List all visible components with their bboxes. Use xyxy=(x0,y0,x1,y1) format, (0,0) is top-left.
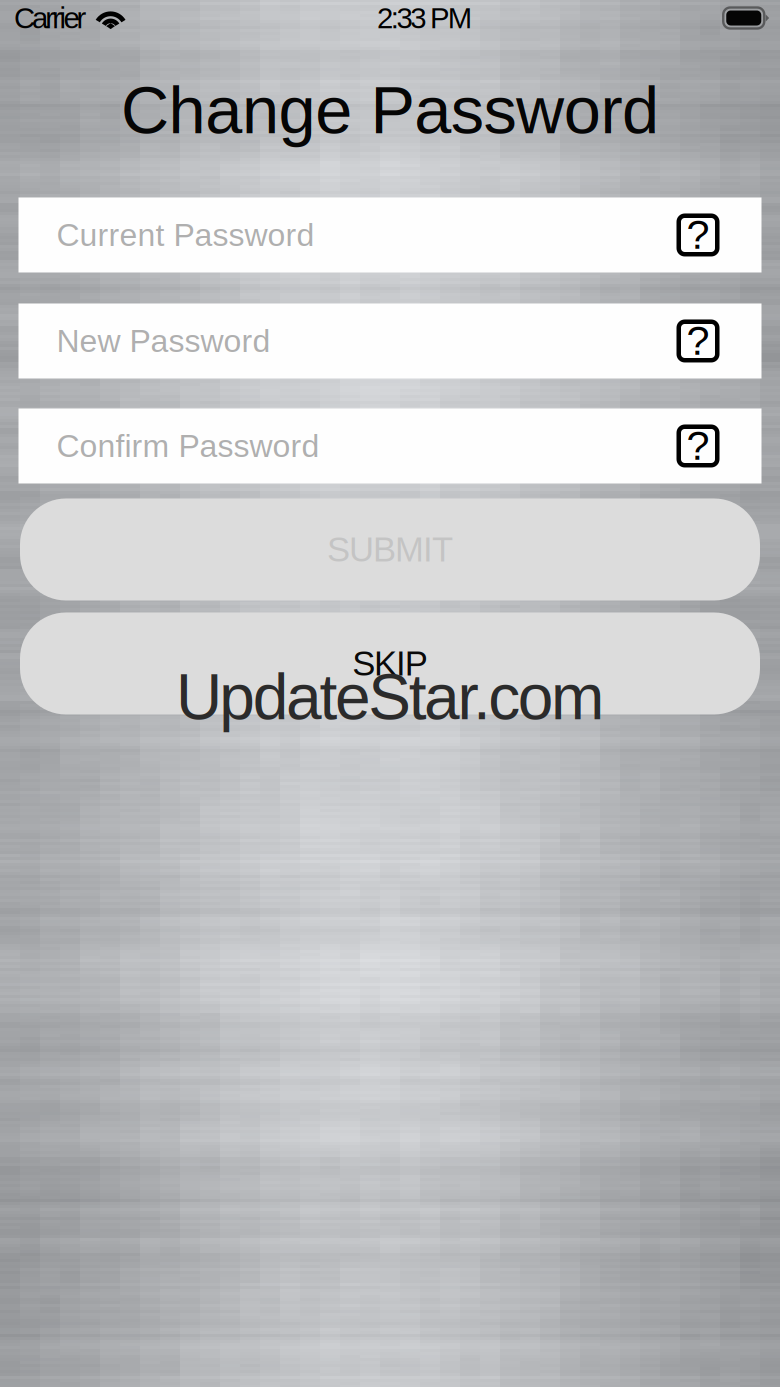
staticText: ? xyxy=(686,422,709,469)
staticText: Change Password xyxy=(121,73,659,147)
button[interactable]: About Confirm Password xyxy=(676,424,719,467)
button[interactable]: About New Password xyxy=(676,319,719,362)
staticText: ? xyxy=(686,211,709,258)
staticText: UpdateStar.com xyxy=(176,661,604,733)
staticText: Current Password xyxy=(56,217,314,253)
button[interactable]: About Current Password xyxy=(676,213,719,256)
button[interactable]: SKIP xyxy=(20,612,760,714)
staticText: SKIP xyxy=(352,644,428,683)
staticText: ? xyxy=(686,317,709,364)
staticText: SUBMIT xyxy=(327,530,453,569)
staticText: New Password xyxy=(56,323,270,359)
staticText: Carrier xyxy=(14,2,87,34)
staticText: Confirm Password xyxy=(56,428,319,464)
staticText: 2:33 PM xyxy=(377,2,472,34)
button[interactable]: SUBMIT xyxy=(20,498,760,600)
